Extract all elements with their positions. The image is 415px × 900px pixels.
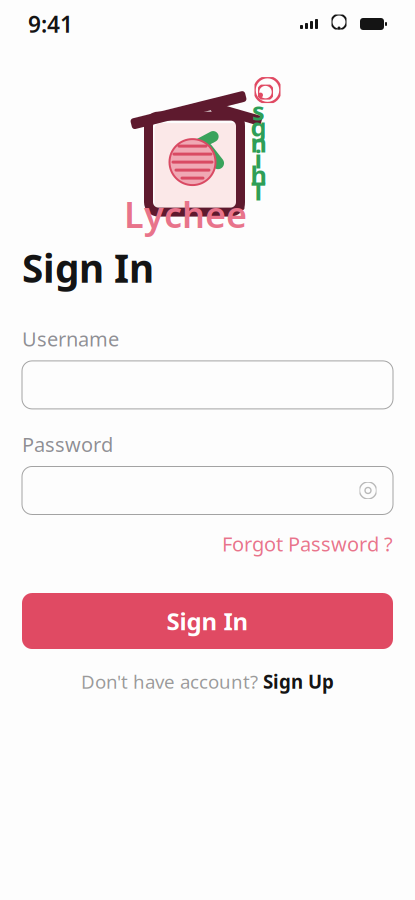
button[interactable]: Show password: [359, 483, 393, 497]
staticText: s: [252, 94, 265, 127]
staticText: i: [254, 142, 262, 175]
staticText: n: [250, 126, 266, 159]
staticText: h: [250, 158, 266, 191]
staticText: Forgot Password ?: [222, 530, 393, 557]
staticText: 9:41: [28, 9, 73, 39]
staticText: g: [250, 110, 266, 143]
staticText: Sign In: [166, 605, 248, 637]
staticText: Sign Up: [263, 669, 334, 694]
button[interactable]: Don't have account?: [22, 649, 393, 694]
staticText: T: [251, 174, 266, 207]
button[interactable]: Sign In: [22, 593, 393, 649]
button[interactable]: Forgot Password ?: [22, 514, 393, 557]
staticText: Don't have account?: [81, 669, 258, 694]
staticText: Lychee: [124, 190, 247, 238]
staticText: Username: [22, 325, 119, 352]
staticText: Sign In: [22, 242, 154, 293]
staticText: Password: [22, 431, 113, 457]
